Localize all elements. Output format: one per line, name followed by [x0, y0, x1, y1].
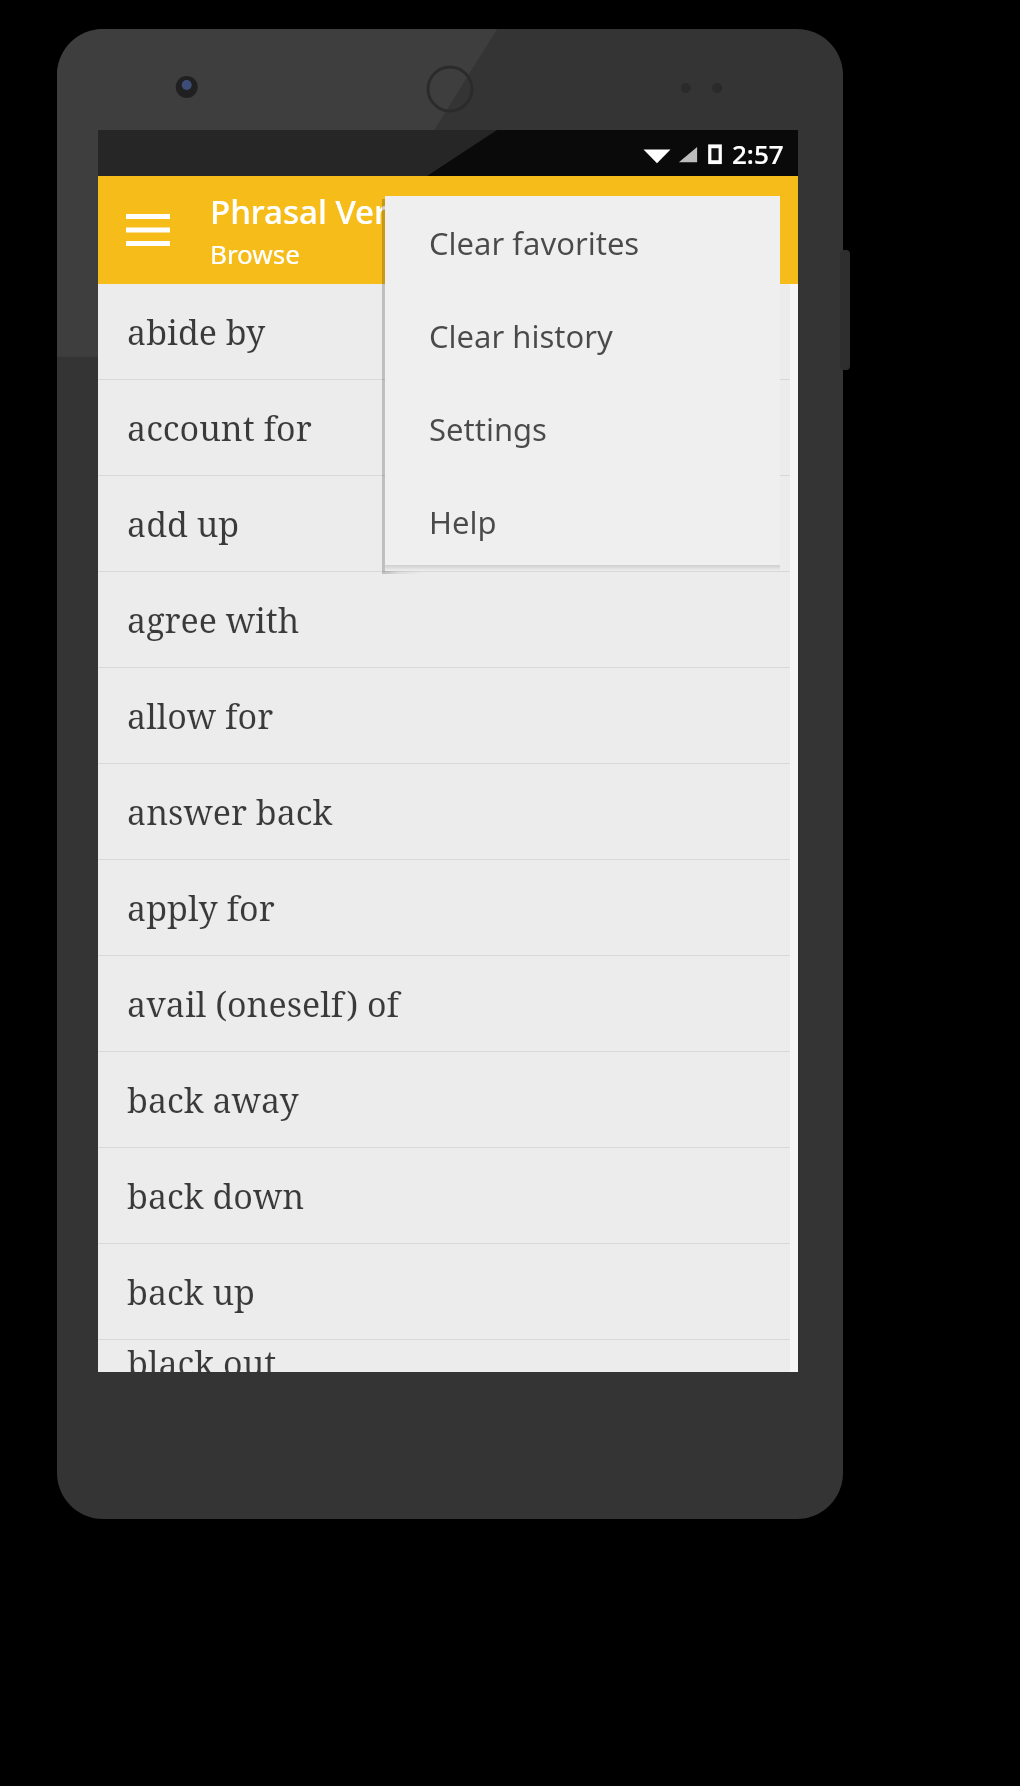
- button[interactable]: allow for: [98, 668, 798, 763]
- staticText: Help: [429, 501, 497, 543]
- staticText: agree with: [127, 597, 300, 643]
- staticText: add up: [127, 501, 240, 547]
- button[interactable]: back up: [98, 1244, 798, 1339]
- button[interactable]: Clear favorites: [385, 196, 780, 289]
- button[interactable]: apply for: [98, 860, 798, 955]
- staticText: answer back: [127, 789, 333, 835]
- staticText: Browse: [210, 236, 300, 271]
- button[interactable]: back away: [98, 1052, 798, 1147]
- button[interactable]: Clear history: [385, 289, 780, 382]
- staticText: 2:57: [732, 136, 784, 171]
- staticText: abide by: [127, 309, 266, 355]
- staticText: back down: [127, 1173, 305, 1219]
- button[interactable]: Open navigation drawer: [112, 194, 184, 266]
- staticText: avail (oneself) of: [127, 981, 400, 1027]
- button[interactable]: abide by: [98, 284, 798, 379]
- staticText: apply for: [127, 885, 275, 931]
- staticText: back up: [127, 1269, 255, 1315]
- button[interactable]: Settings: [385, 382, 780, 475]
- button[interactable]: black out: [98, 1340, 798, 1372]
- staticText: account for: [127, 405, 312, 451]
- button[interactable]: add up: [98, 476, 798, 571]
- button[interactable]: answer back: [98, 764, 798, 859]
- staticText: allow for: [127, 693, 274, 739]
- staticText: Clear favorites: [429, 222, 640, 264]
- button[interactable]: back down: [98, 1148, 798, 1243]
- button[interactable]: avail (oneself) of: [98, 956, 798, 1051]
- button[interactable]: agree with: [98, 572, 798, 667]
- button[interactable]: Help: [385, 475, 780, 568]
- staticText: Phrasal Verbs: [210, 189, 425, 234]
- staticText: Clear history: [429, 315, 613, 357]
- button[interactable]: account for: [98, 380, 798, 475]
- staticText: Settings: [429, 408, 547, 450]
- staticText: back away: [127, 1077, 299, 1123]
- staticText: black out: [127, 1340, 277, 1372]
